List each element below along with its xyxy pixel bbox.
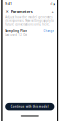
staticText: + bbox=[52, 9, 54, 14]
staticText: Last used 12 Oct bbox=[5, 33, 27, 37]
button[interactable]: Change bbox=[43, 29, 54, 33]
staticText: ıl ◗ bbox=[50, 2, 54, 6]
staticText: Adjust how the model generates its respo… bbox=[5, 15, 54, 26]
button[interactable]: Add bbox=[51, 9, 54, 13]
button[interactable]: Close bbox=[5, 9, 9, 13]
staticText: Continue with this model bbox=[11, 105, 49, 108]
staticText: Sampling Plan bbox=[5, 29, 27, 33]
button[interactable]: Continue with this model bbox=[5, 103, 54, 110]
staticText: Parameters bbox=[11, 9, 33, 14]
staticText: Change bbox=[43, 29, 54, 33]
staticText: 9:41 bbox=[5, 2, 12, 6]
staticText: ✕ bbox=[5, 9, 8, 14]
